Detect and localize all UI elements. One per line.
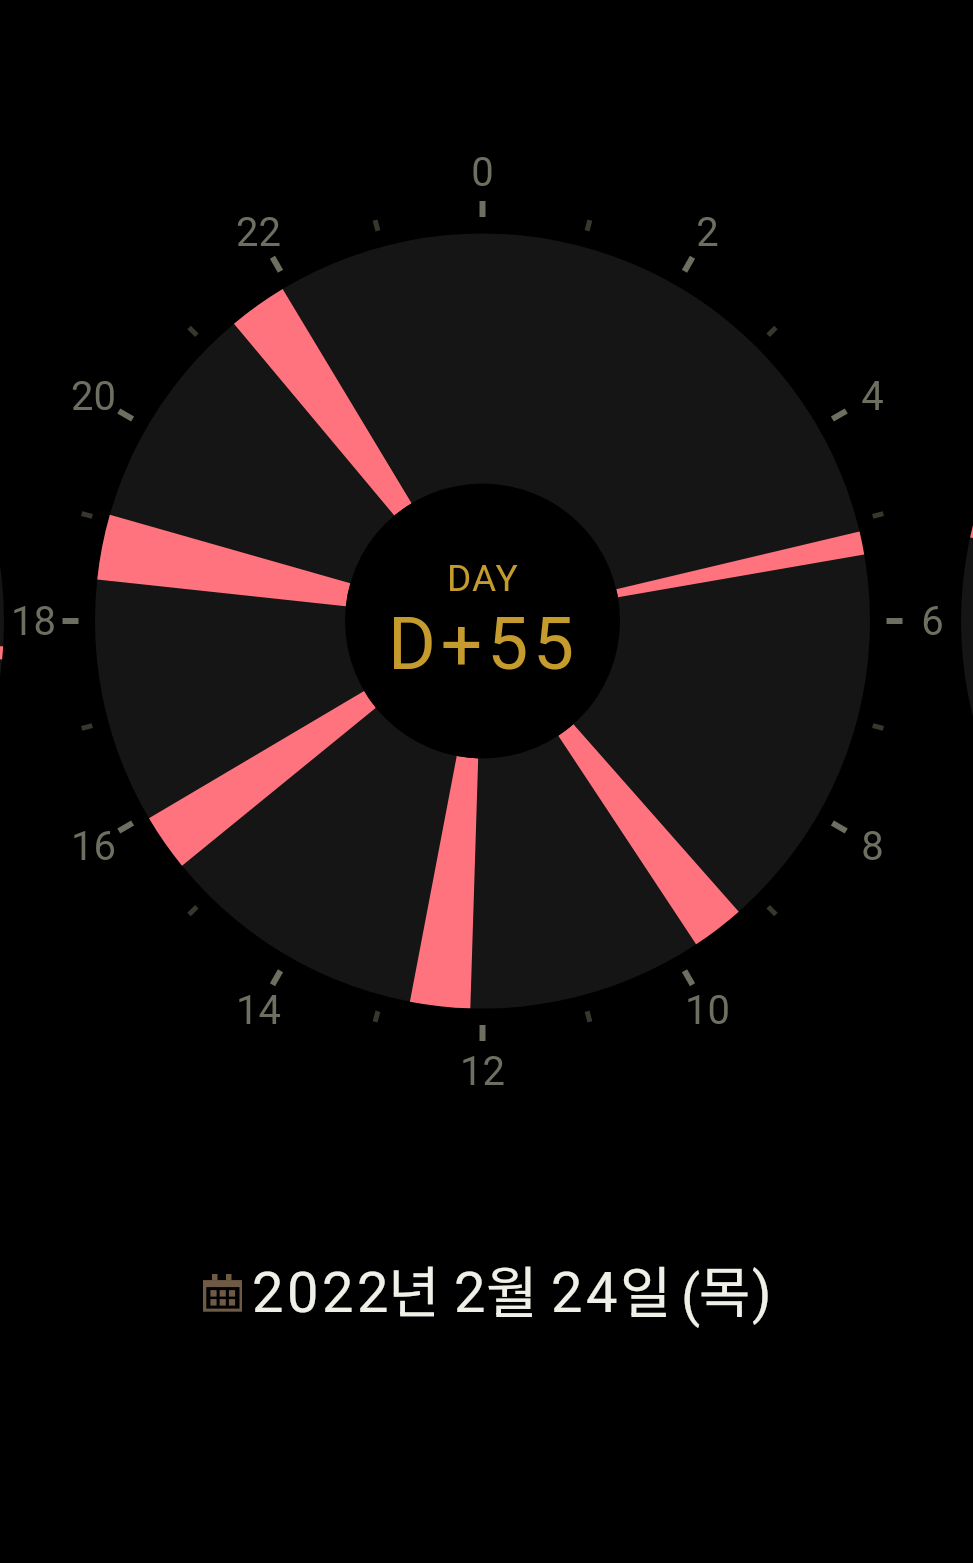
staticText: ( bbox=[681, 1263, 701, 1329]
staticText: 14 bbox=[236, 987, 281, 1034]
other: Calendar bbox=[203, 1274, 243, 1314]
staticText: 8 bbox=[861, 823, 884, 870]
staticText: 20 bbox=[71, 373, 116, 420]
staticText: DAY bbox=[447, 557, 519, 600]
staticText: 0 bbox=[471, 149, 494, 196]
staticText: 목 bbox=[699, 1248, 751, 1329]
staticText: 24 bbox=[551, 1260, 622, 1326]
staticText: 22 bbox=[236, 209, 281, 256]
staticText: 18 bbox=[11, 598, 56, 645]
staticText: 2 bbox=[696, 209, 719, 256]
staticText: 6 bbox=[921, 598, 944, 645]
staticText: ) bbox=[752, 1260, 772, 1326]
staticText: 2022 bbox=[252, 1260, 393, 1326]
staticText: 년 bbox=[388, 1248, 440, 1329]
button[interactable]: DAY bbox=[343, 557, 623, 697]
staticText: 2 bbox=[454, 1260, 486, 1326]
button[interactable]: Calendar bbox=[196, 1240, 796, 1340]
staticText: 일 bbox=[620, 1248, 672, 1329]
staticText: 4 bbox=[861, 373, 884, 420]
staticText: D+55 bbox=[388, 601, 579, 687]
staticText: 월 bbox=[486, 1248, 538, 1329]
staticText: 10 bbox=[685, 987, 730, 1034]
staticText: 16 bbox=[71, 823, 116, 870]
staticText: 12 bbox=[460, 1048, 505, 1095]
